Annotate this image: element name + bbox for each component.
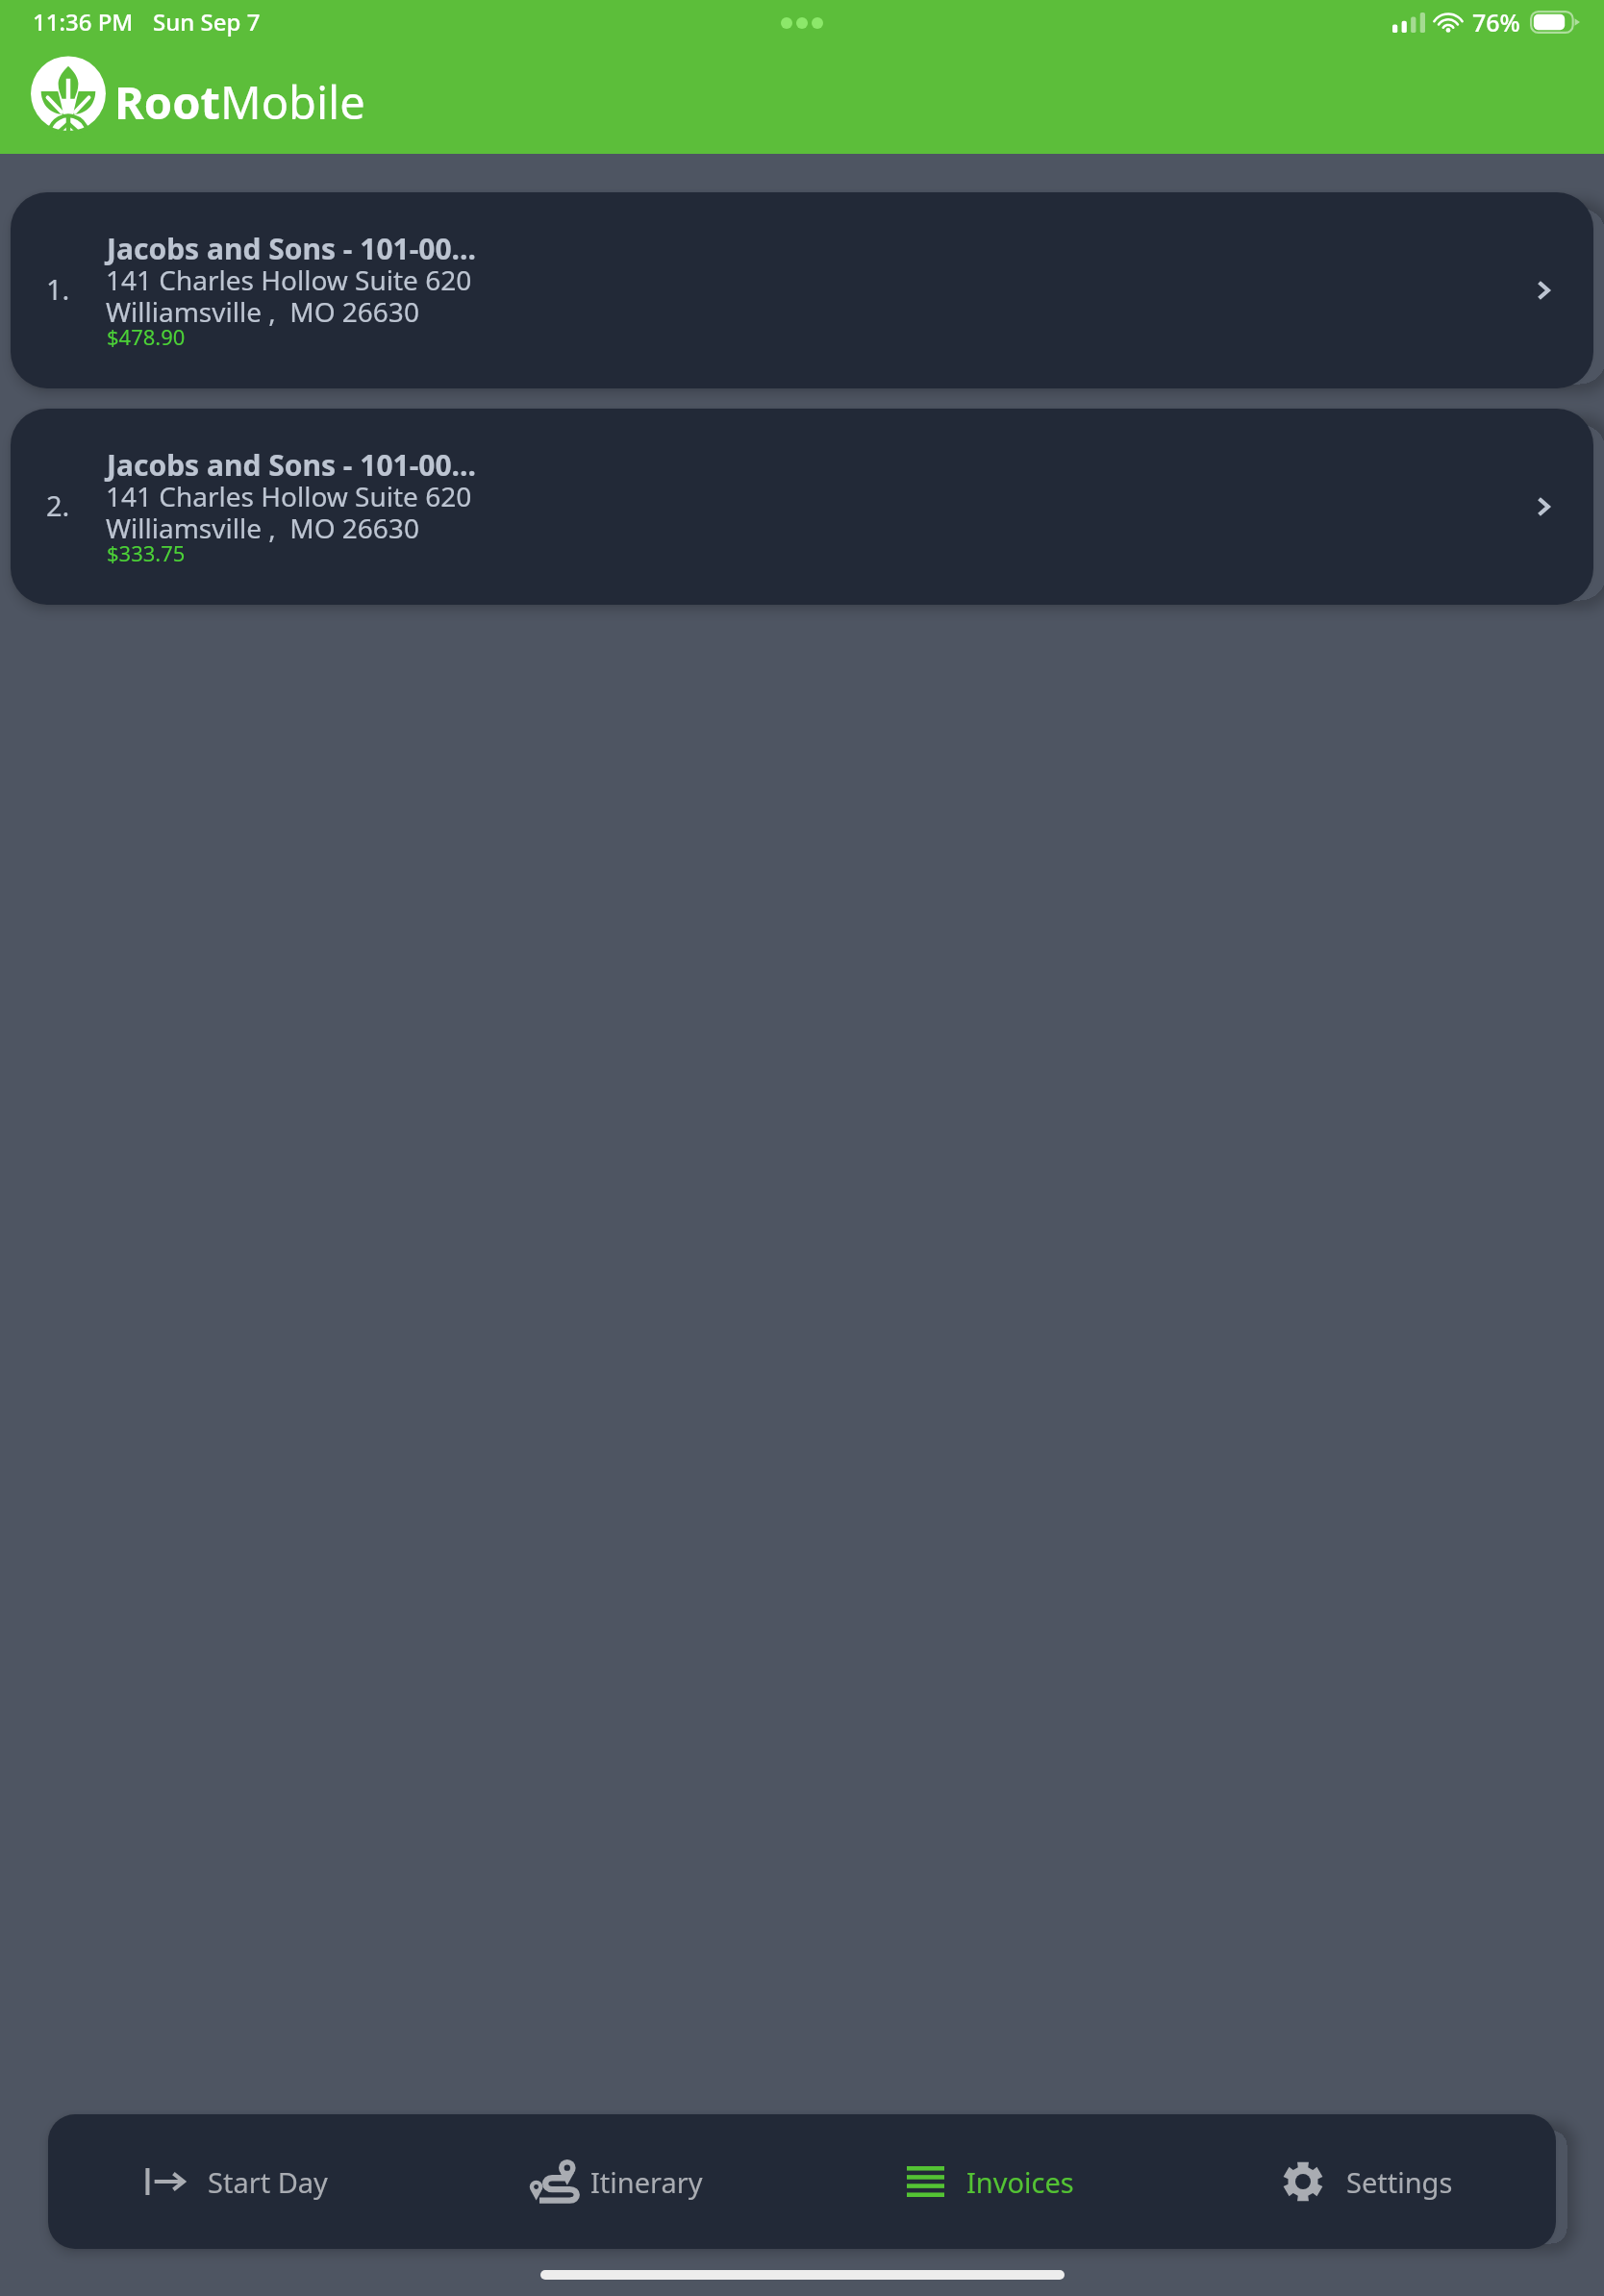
other: Itinerary: [524, 2160, 578, 2203]
button[interactable]: Itinerary: [425, 2114, 802, 2249]
button[interactable]: Settings: [1179, 2114, 1556, 2249]
staticText: $333.75: [107, 538, 186, 567]
staticText: Williamsville , MO 26630: [106, 293, 419, 330]
staticText: Invoices: [966, 2163, 1074, 2201]
staticText: Jacobs and Sons - 101-00...: [107, 445, 476, 485]
staticText: 141 Charles Hollow Suite 620: [106, 478, 472, 514]
staticText: 1.: [46, 270, 70, 308]
button[interactable]: 1.: [11, 192, 1593, 388]
staticText: Jacobs and Sons - 101-00...: [107, 229, 476, 268]
staticText: Sun Sep 7: [153, 6, 261, 37]
staticText: Itinerary: [590, 2163, 703, 2201]
other: Start Day: [145, 2168, 186, 2195]
staticText: 76%: [1472, 6, 1520, 38]
staticText: 141 Charles Hollow Suite 620: [106, 262, 472, 298]
staticText: Start Day: [208, 2163, 328, 2201]
button[interactable]: Start Day: [48, 2114, 425, 2249]
staticText: $478.90: [107, 322, 186, 351]
other: RootMobile logo: [29, 56, 108, 135]
staticText: Root: [114, 71, 220, 133]
staticText: Settings: [1346, 2163, 1453, 2201]
staticText: Williamsville , MO 26630: [106, 510, 419, 546]
staticText: 11:36 PM: [33, 6, 134, 37]
button[interactable]: 2.: [11, 409, 1593, 605]
other: Settings: [1283, 2161, 1323, 2202]
other: Invoices: [907, 2166, 944, 2197]
staticText: Mobile: [220, 71, 365, 133]
button[interactable]: Invoices: [802, 2114, 1179, 2249]
staticText: 2.: [46, 487, 70, 524]
